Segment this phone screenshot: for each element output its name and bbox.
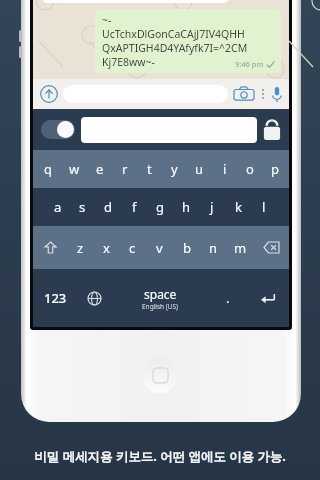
staticText: b xyxy=(183,239,191,257)
button[interactable]: f xyxy=(121,188,147,226)
staticText: i xyxy=(223,160,227,178)
button[interactable]: j xyxy=(199,188,225,226)
staticText: o xyxy=(246,160,254,178)
staticText: n xyxy=(209,239,218,257)
staticText: u xyxy=(195,160,204,178)
button[interactable]: . xyxy=(209,269,246,327)
button[interactable]: Backspace xyxy=(254,226,289,269)
staticText: a xyxy=(54,198,62,216)
button[interactable]: h xyxy=(173,188,199,226)
button[interactable]: c xyxy=(119,226,146,269)
staticText: m xyxy=(234,239,247,257)
button[interactable]: Shift xyxy=(33,226,67,269)
staticText: p xyxy=(271,160,279,178)
button[interactable]: Camera xyxy=(234,86,254,102)
button[interactable]: Change language xyxy=(78,269,111,327)
staticText: . xyxy=(226,289,230,307)
staticText: l xyxy=(262,198,266,216)
staticText: t xyxy=(147,160,152,178)
button[interactable]: Send attachment xyxy=(40,85,58,103)
staticText: 123 xyxy=(44,289,67,307)
button[interactable]: l xyxy=(251,188,277,226)
button[interactable]: k xyxy=(225,188,251,226)
staticText: g xyxy=(156,198,164,216)
button[interactable]: p xyxy=(262,150,287,188)
button[interactable]: space xyxy=(111,269,209,327)
button[interactable]: e xyxy=(87,150,112,188)
button[interactable]: s xyxy=(70,188,95,226)
staticText: c xyxy=(129,239,136,257)
staticText: x xyxy=(103,239,110,257)
staticText: q xyxy=(44,160,52,178)
staticText: f xyxy=(132,198,137,216)
staticText: y xyxy=(171,160,178,178)
button[interactable]: ~- xyxy=(102,13,274,69)
staticText: English (US) xyxy=(142,302,179,311)
button[interactable] xyxy=(81,117,257,143)
button[interactable]: d xyxy=(95,188,121,226)
staticText: s xyxy=(79,198,86,216)
staticText: j xyxy=(210,198,214,216)
button[interactable]: a xyxy=(45,188,70,226)
button[interactable]: g xyxy=(147,188,173,226)
button[interactable]: Voice message xyxy=(271,86,283,103)
staticText: z xyxy=(77,239,84,257)
button[interactable]: o xyxy=(237,150,262,188)
staticText: UcTchxDlGonCaCAjJ7IV4QHH xyxy=(102,27,245,41)
staticText: QxAPTIGH4D4YAfyfk7I=^2CM xyxy=(102,41,248,55)
staticText: ~- xyxy=(102,13,112,27)
button[interactable]: 123 xyxy=(33,269,78,327)
button[interactable]: i xyxy=(212,150,237,188)
button[interactable]: b xyxy=(173,226,200,269)
staticText: 9:46 pm xyxy=(235,59,264,69)
staticText: e xyxy=(96,160,104,178)
staticText: space xyxy=(144,286,177,302)
button[interactable]: CMKj7E8ww~- xyxy=(43,0,229,3)
button[interactable]: r xyxy=(112,150,137,188)
button[interactable]: n xyxy=(200,226,227,269)
staticText: 비밀 메세지용 키보드. 어떤 앱에도 이용 가능. xyxy=(0,448,320,465)
button[interactable]: u xyxy=(187,150,212,188)
button[interactable]: q xyxy=(35,150,61,188)
button[interactable]: v xyxy=(146,226,173,269)
staticText: Kj7E8ww~- xyxy=(102,55,155,69)
staticText: v xyxy=(156,239,163,257)
button[interactable]: Secret mode toggle xyxy=(41,120,75,139)
button[interactable]: Lock xyxy=(263,118,281,142)
button[interactable]: z xyxy=(67,226,93,269)
staticText: h xyxy=(182,198,191,216)
button[interactable]: More options xyxy=(259,86,267,102)
staticText: k xyxy=(235,198,242,216)
button[interactable]: m xyxy=(227,226,254,269)
staticText: w xyxy=(69,160,80,178)
staticText: r xyxy=(122,160,128,178)
button[interactable]: Home xyxy=(142,357,178,393)
button[interactable]: w xyxy=(61,150,87,188)
button[interactable]: y xyxy=(162,150,187,188)
button[interactable]: Enter xyxy=(246,269,289,327)
button[interactable]: t xyxy=(137,150,162,188)
button[interactable]: x xyxy=(93,226,119,269)
staticText: d xyxy=(104,198,112,216)
